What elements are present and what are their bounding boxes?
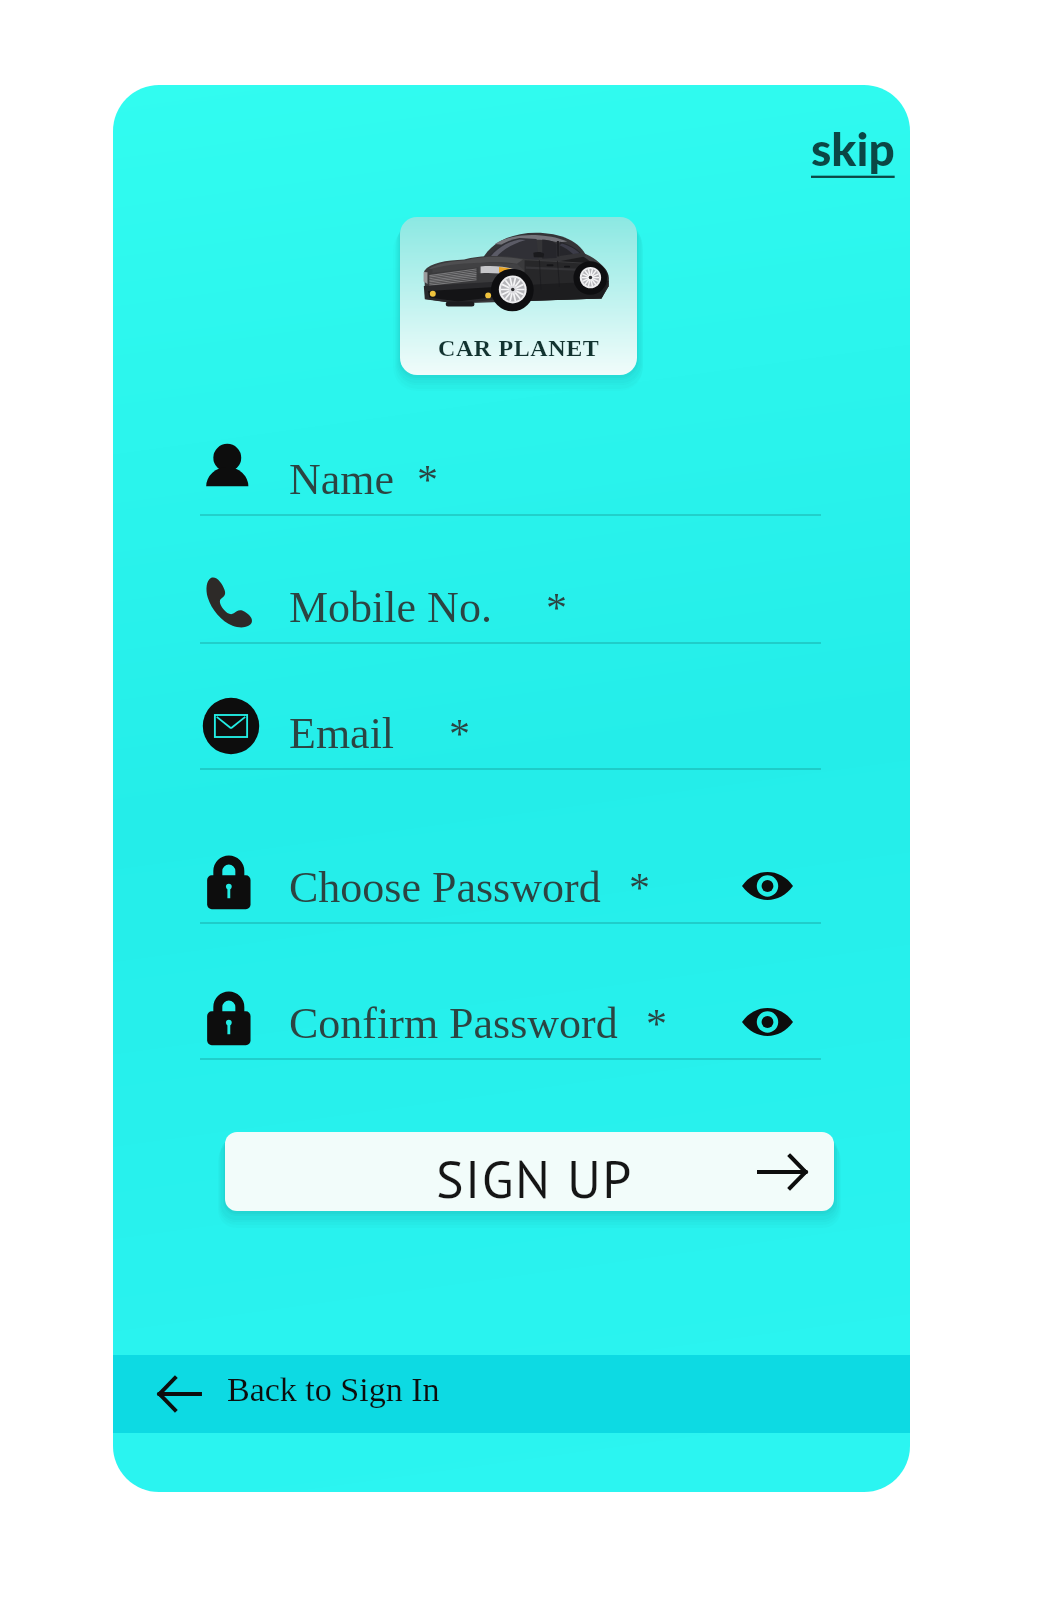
staticText: * (646, 1001, 667, 1048)
button[interactable]: CAR PLANET (400, 217, 637, 375)
staticText: skip (811, 121, 895, 176)
button[interactable]: Show password (730, 856, 804, 916)
staticText: Mobile No. (289, 583, 492, 632)
button[interactable]: Choose Password (200, 834, 821, 946)
button[interactable]: Confirm Password (200, 970, 821, 1082)
staticText: Name (289, 455, 395, 504)
staticText: Choose Password (289, 863, 601, 912)
button[interactable]: skip (811, 121, 895, 176)
staticText: * (449, 711, 470, 758)
staticText: * (417, 457, 438, 504)
button[interactable]: Email (200, 680, 821, 792)
button[interactable]: Name (200, 426, 821, 538)
staticText: * (546, 585, 567, 632)
other: Back (158, 1372, 200, 1416)
button[interactable]: SIGN UP (225, 1132, 834, 1211)
staticText: Email (289, 709, 395, 758)
staticText: Back to Sign In (227, 1371, 440, 1409)
staticText: * (629, 865, 650, 912)
staticText: CAR PLANET (438, 335, 600, 362)
staticText: Confirm Password (289, 999, 618, 1048)
button[interactable]: Mobile No. (200, 554, 821, 666)
staticText: SIGN UP (436, 1145, 633, 1211)
button[interactable]: Back (113, 1355, 910, 1433)
button[interactable]: Show password (730, 992, 804, 1052)
